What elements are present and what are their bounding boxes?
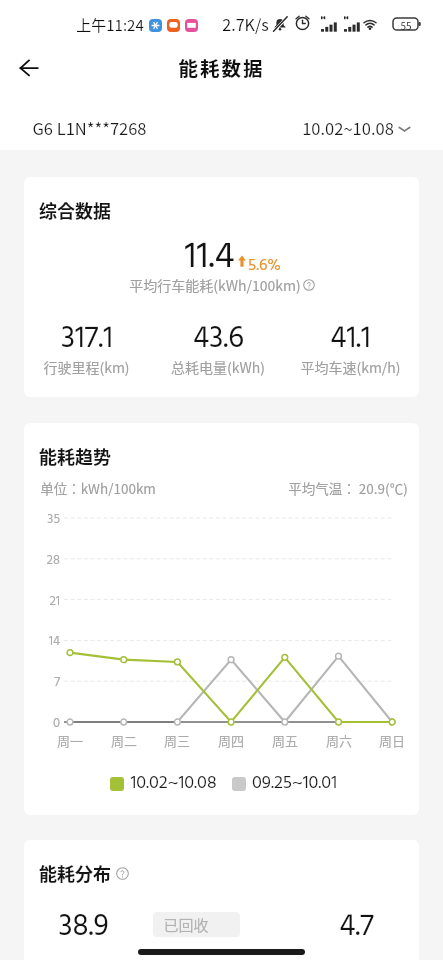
staticText: 21 (24, 591, 60, 612)
staticText: 14 (24, 631, 60, 652)
button[interactable]: 已回收 (153, 912, 240, 937)
staticText: 10.02~10.08 (302, 116, 394, 140)
staticText: 0 (24, 713, 60, 734)
button[interactable]: G6 L1N***7268 (32, 116, 147, 140)
staticText: 综合数据 (39, 197, 111, 223)
staticText: 平均气温： 20.9(℃) (288, 478, 408, 498)
button[interactable]: 09.25~10.01 (232, 769, 337, 798)
staticText: 周六 (313, 731, 365, 750)
button[interactable]: Back (9, 48, 49, 88)
staticText: 平均行车能耗(kWh/100km) (129, 275, 301, 295)
staticText: 2.7K/s (222, 12, 269, 35)
staticText: 35 (24, 509, 60, 530)
staticText: 10.02~10.08 (130, 769, 217, 798)
staticText: 周一 (44, 731, 96, 750)
staticText: 41.1 (330, 315, 371, 363)
staticText: 28 (24, 550, 60, 571)
staticText: 能耗分布 (39, 860, 111, 886)
staticText: 4.7 (339, 903, 374, 951)
staticText: 已回收 (163, 914, 209, 936)
button[interactable]: 10.02~10.08 (302, 116, 411, 140)
staticText: 周日 (366, 731, 418, 750)
staticText: 平均车速(km/h) (300, 357, 401, 377)
staticText: 能耗数据 (0, 53, 443, 81)
button[interactable]: 平均行车能耗说明 (303, 279, 315, 291)
staticText: 单位：kWh/100km (40, 478, 156, 498)
button[interactable]: 317.1 (24, 315, 152, 383)
staticText: 38.9 (58, 903, 109, 951)
staticText: 11.4 (184, 228, 235, 287)
staticText: 上午11:24 (76, 14, 144, 36)
button[interactable]: 43.6 (152, 315, 284, 383)
staticText: 43.6 (193, 315, 244, 363)
staticText: 5.6% (248, 253, 281, 279)
staticText: 55 (400, 18, 412, 30)
staticText: 7 (24, 672, 60, 693)
staticText: 周二 (98, 731, 150, 750)
staticText: 317.1 (61, 315, 113, 363)
staticText: 09.25~10.01 (252, 769, 337, 798)
staticText: 总耗电量(kWh) (171, 357, 265, 377)
button[interactable]: 10.02~10.08 (110, 769, 217, 798)
button[interactable]: 能耗分布说明 (116, 867, 129, 880)
staticText: 周三 (151, 731, 203, 750)
button[interactable]: 能耗分布 (39, 860, 129, 886)
staticText: 周四 (205, 731, 257, 750)
staticText: G6 L1N***7268 (32, 116, 147, 140)
staticText: 行驶里程(km) (43, 357, 130, 377)
button[interactable]: 41.1 (284, 315, 416, 383)
staticText: 周五 (259, 731, 311, 750)
staticText: 能耗趋势 (39, 443, 111, 469)
